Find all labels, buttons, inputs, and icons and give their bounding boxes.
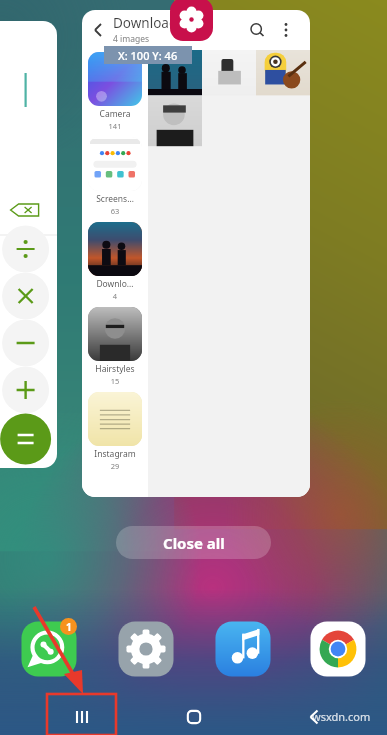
button[interactable]: Music xyxy=(211,617,275,681)
button[interactable]: Hairstyles xyxy=(82,301,148,386)
button[interactable]: More options xyxy=(274,18,298,42)
staticText: 141 xyxy=(82,121,148,131)
button[interactable]: Search xyxy=(245,18,269,42)
button[interactable]: Screens… xyxy=(82,131,148,216)
button[interactable]: Close all xyxy=(116,526,271,559)
staticText: wsxdn.com xyxy=(312,709,371,724)
button[interactable]: Downlo… xyxy=(82,216,148,301)
staticText: 63 xyxy=(82,206,148,216)
button[interactable]: Chrome xyxy=(306,617,370,681)
staticText: 29 xyxy=(82,461,148,471)
button[interactable]: Gallery app xyxy=(170,0,213,41)
button[interactable] xyxy=(0,21,57,468)
staticText: Instagram xyxy=(82,448,148,460)
staticText: Camera xyxy=(82,108,148,120)
staticText: 15 xyxy=(82,376,148,386)
button[interactable]: Home xyxy=(172,698,216,735)
button[interactable]: Back xyxy=(82,10,310,497)
staticText: Hairstyles xyxy=(82,363,148,375)
staticText: X: 100 Y: 46 xyxy=(118,48,178,63)
staticText: Close all xyxy=(163,533,225,553)
button[interactable]: Settings xyxy=(114,617,178,681)
button[interactable]: Back xyxy=(292,698,336,735)
staticText: 1 xyxy=(66,620,72,634)
button[interactable]: WhatsApp xyxy=(17,617,81,681)
button[interactable]: Camera xyxy=(82,50,148,131)
button[interactable]: Recents xyxy=(48,698,116,735)
button[interactable]: Back xyxy=(86,18,110,42)
button[interactable]: Instagram xyxy=(82,386,148,471)
staticText: Screens… xyxy=(82,193,148,205)
staticText: 4 xyxy=(82,291,148,301)
staticText: 4 images xyxy=(113,33,150,45)
staticText: Downlo… xyxy=(82,278,148,290)
staticText: Downloads xyxy=(113,14,184,32)
